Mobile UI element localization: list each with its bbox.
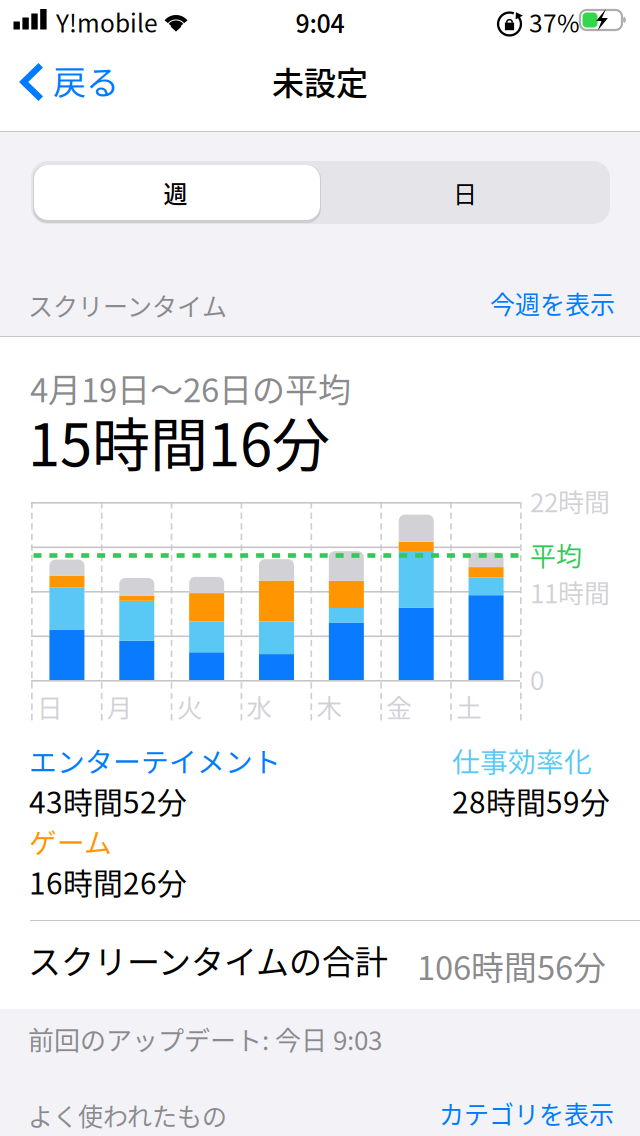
staticText: スクリーンタイムの合計 <box>28 936 388 984</box>
staticText: 9:04 <box>295 4 344 40</box>
staticText: 0 <box>530 660 544 698</box>
button[interactable]: 日 <box>320 161 610 224</box>
staticText: 22時間 <box>530 482 610 520</box>
staticText: 週 <box>163 175 187 210</box>
staticText: 土 <box>456 688 482 725</box>
staticText: 仕事効率化 <box>452 740 592 780</box>
staticText: 11時間 <box>530 573 610 611</box>
staticText: 16時間26分 <box>29 860 187 903</box>
staticText: 平均 <box>530 536 582 574</box>
button[interactable]: 今週を表示 <box>470 283 615 323</box>
staticText: エンターテイメント <box>29 740 281 780</box>
staticText: 戻る <box>53 56 119 104</box>
staticText: スクリーンタイム <box>28 287 227 323</box>
staticText: 15時間16分 <box>28 399 330 483</box>
button[interactable]: 戻る <box>0 43 133 121</box>
staticText: 28時間59分 <box>452 779 610 822</box>
button[interactable]: カテゴリを表示 <box>434 1093 614 1133</box>
staticText: 37% <box>529 4 580 39</box>
staticText: Y!mobile <box>56 4 158 39</box>
staticText: 木 <box>316 688 342 725</box>
staticText: カテゴリを表示 <box>439 1095 614 1131</box>
staticText: 4月19日〜26日の平均 <box>30 364 351 412</box>
staticText: 火 <box>177 688 203 725</box>
staticText: 月 <box>107 688 133 725</box>
staticText: ゲーム <box>29 821 112 861</box>
staticText: よく使われたもの <box>28 1097 227 1133</box>
staticText: 43時間52分 <box>29 779 187 822</box>
staticText: 日 <box>453 175 477 210</box>
staticText: 今週を表示 <box>490 285 615 321</box>
staticText: 水 <box>247 688 273 725</box>
staticText: 前回のアップデート: 今日 9:03 <box>28 1020 382 1058</box>
button[interactable]: 週 <box>31 161 320 224</box>
staticText: 金 <box>386 688 412 725</box>
staticText: 未設定 <box>272 58 368 104</box>
staticText: 106時間56分 <box>417 942 606 989</box>
staticText: 日 <box>37 688 63 725</box>
